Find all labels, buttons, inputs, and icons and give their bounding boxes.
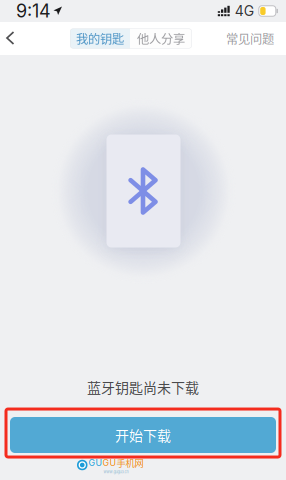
button[interactable]: 他人分享 xyxy=(130,28,192,48)
button[interactable]: 我的钥匙 xyxy=(70,28,130,48)
staticText: 蓝牙钥匙尚未下载 xyxy=(87,377,199,397)
staticText: GU xyxy=(88,457,102,468)
staticText: 开始下载 xyxy=(115,425,171,445)
button[interactable]: Back xyxy=(0,22,28,55)
staticText: 常见问题 xyxy=(226,30,274,47)
staticText: GU xyxy=(102,457,116,468)
staticText: 手机网 xyxy=(116,456,143,469)
staticText: 他人分享 xyxy=(137,30,185,47)
staticText: 我的钥匙 xyxy=(76,30,124,47)
staticText: www.gugu3.cn xyxy=(103,469,128,474)
staticText: 9:14 xyxy=(16,0,51,22)
button[interactable]: 开始下载 xyxy=(10,417,276,453)
button[interactable]: 常见问题 xyxy=(226,22,286,55)
staticText: 4G xyxy=(235,2,254,19)
